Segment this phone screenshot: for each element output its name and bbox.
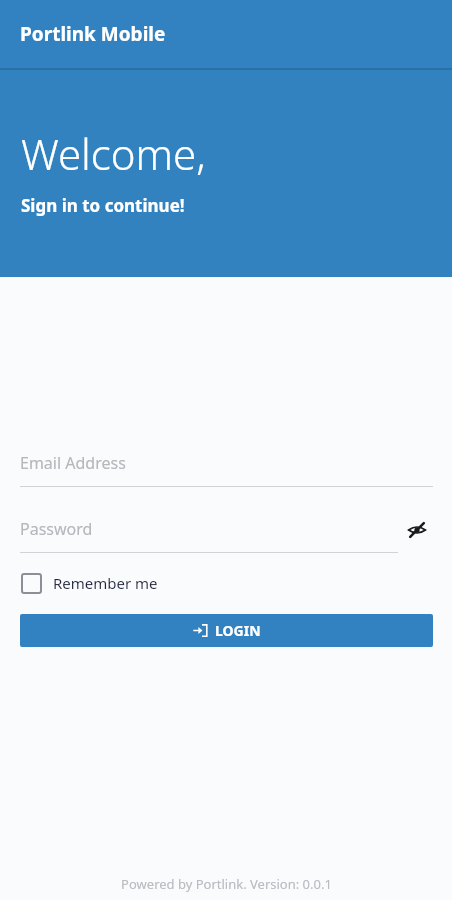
staticText: Password — [20, 518, 93, 540]
staticText: Welcome, — [21, 125, 206, 182]
staticText: Powered by Portlink. Version: 0.0.1 — [121, 875, 332, 893]
staticText: Portlink Mobile — [20, 21, 166, 47]
staticText: Remember me — [53, 573, 158, 593]
button[interactable]: Show password — [405, 518, 429, 542]
staticText: Sign in to continue! — [21, 194, 185, 217]
button[interactable]: Password — [0, 518, 452, 553]
staticText: LOGIN — [215, 621, 261, 640]
button[interactable]: Email Address — [0, 452, 452, 487]
button[interactable]: Remember me — [22, 573, 158, 593]
staticText: Email Address — [20, 452, 126, 474]
button[interactable]: LOGIN — [20, 614, 433, 647]
